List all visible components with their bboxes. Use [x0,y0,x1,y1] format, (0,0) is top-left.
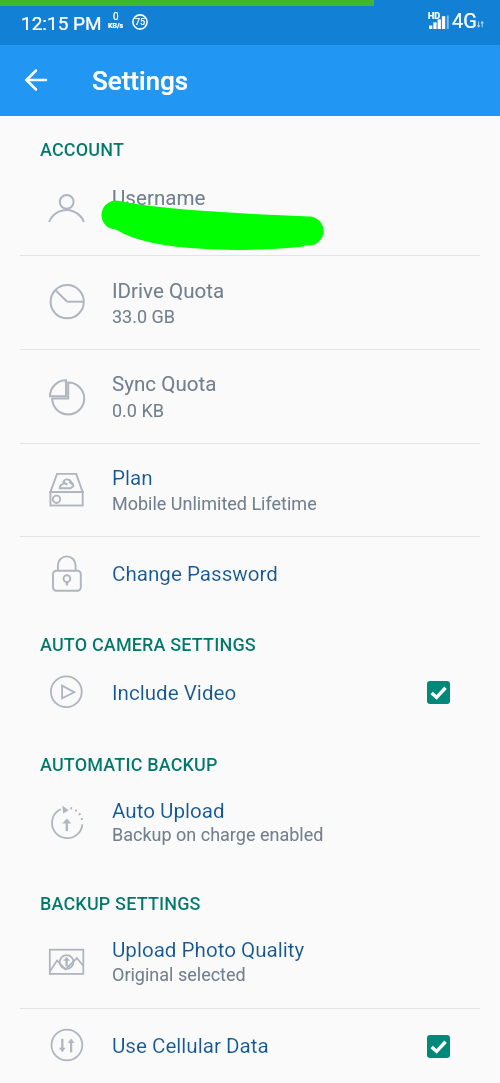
staticText: Sync Quota [112,372,217,396]
staticText: 4G [452,9,477,32]
staticText: 75 [135,17,146,28]
button[interactable]: Change Password [0,537,500,612]
staticText: AUTOMATIC BACKUP [40,754,218,775]
staticText: Settings [92,66,189,96]
staticText: Plan [112,466,153,490]
staticText: Original selected [112,964,246,985]
button[interactable]: Use Cellular Data [0,1009,500,1083]
staticText: BACKUP SETTINGS [40,893,201,914]
staticText: HD [428,11,441,22]
staticText: KB/s [108,22,124,30]
button[interactable]: Include Video [0,660,500,725]
button[interactable]: Username [0,165,500,255]
staticText: Mobile Unlimited Lifetime [112,493,317,514]
staticText: IDrive Quota [112,279,225,303]
staticText: Username [112,186,206,210]
button[interactable]: Upload Photo Quality [0,920,500,1008]
staticText: Use Cellular Data [112,1034,269,1058]
button[interactable]: Plan [0,444,500,536]
staticText: 12:15 PM [21,12,102,34]
staticText: ACCOUNT [40,139,125,160]
button[interactable]: IDrive Quota [0,256,500,349]
staticText: Change Password [112,562,278,586]
staticText: Backup on charge enabled [112,824,324,845]
staticText: 33.0 GB [112,306,176,327]
staticText: AUTO CAMERA SETTINGS [40,634,256,655]
staticText: 0 [113,11,119,23]
staticText: Include Video [112,681,237,705]
button[interactable]: Auto Upload [0,780,500,860]
staticText: 0.0 KB [112,400,164,421]
button[interactable]: Sync Quota [0,350,500,443]
staticText: Upload Photo Quality [112,938,305,962]
staticText: Auto Upload [112,799,225,823]
button[interactable]: Back [0,45,71,116]
